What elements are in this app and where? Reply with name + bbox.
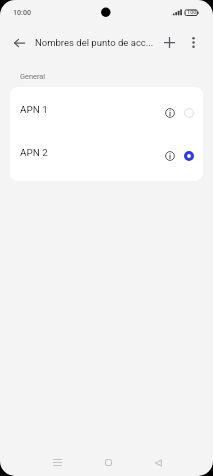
staticText: 10:00 xyxy=(13,8,31,16)
button[interactable]: More options xyxy=(179,28,208,57)
staticText: 100 xyxy=(187,9,197,16)
button[interactable]: Select APN 2 xyxy=(179,146,199,166)
staticText: Nombres del punto de acc... xyxy=(35,37,160,48)
staticText: General xyxy=(20,72,46,81)
button[interactable]: APN 1 xyxy=(10,91,203,134)
button[interactable]: Info about APN 1 xyxy=(161,104,179,122)
button[interactable]: Recent apps xyxy=(44,449,71,476)
staticText: APN 1 xyxy=(20,104,48,116)
button[interactable]: Home xyxy=(95,449,122,476)
button[interactable]: Select APN 1 xyxy=(179,103,199,123)
button[interactable]: Add xyxy=(155,28,184,57)
button[interactable]: APN 2 xyxy=(10,134,203,177)
button[interactable]: Info about APN 2 xyxy=(161,147,179,165)
button[interactable]: Back xyxy=(145,449,172,476)
staticText: APN 2 xyxy=(20,147,48,159)
button[interactable]: Back xyxy=(5,28,34,57)
